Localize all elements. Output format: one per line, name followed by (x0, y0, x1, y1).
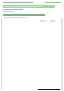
button[interactable] (3, 5, 55, 8)
button[interactable] (3, 1, 61, 4)
